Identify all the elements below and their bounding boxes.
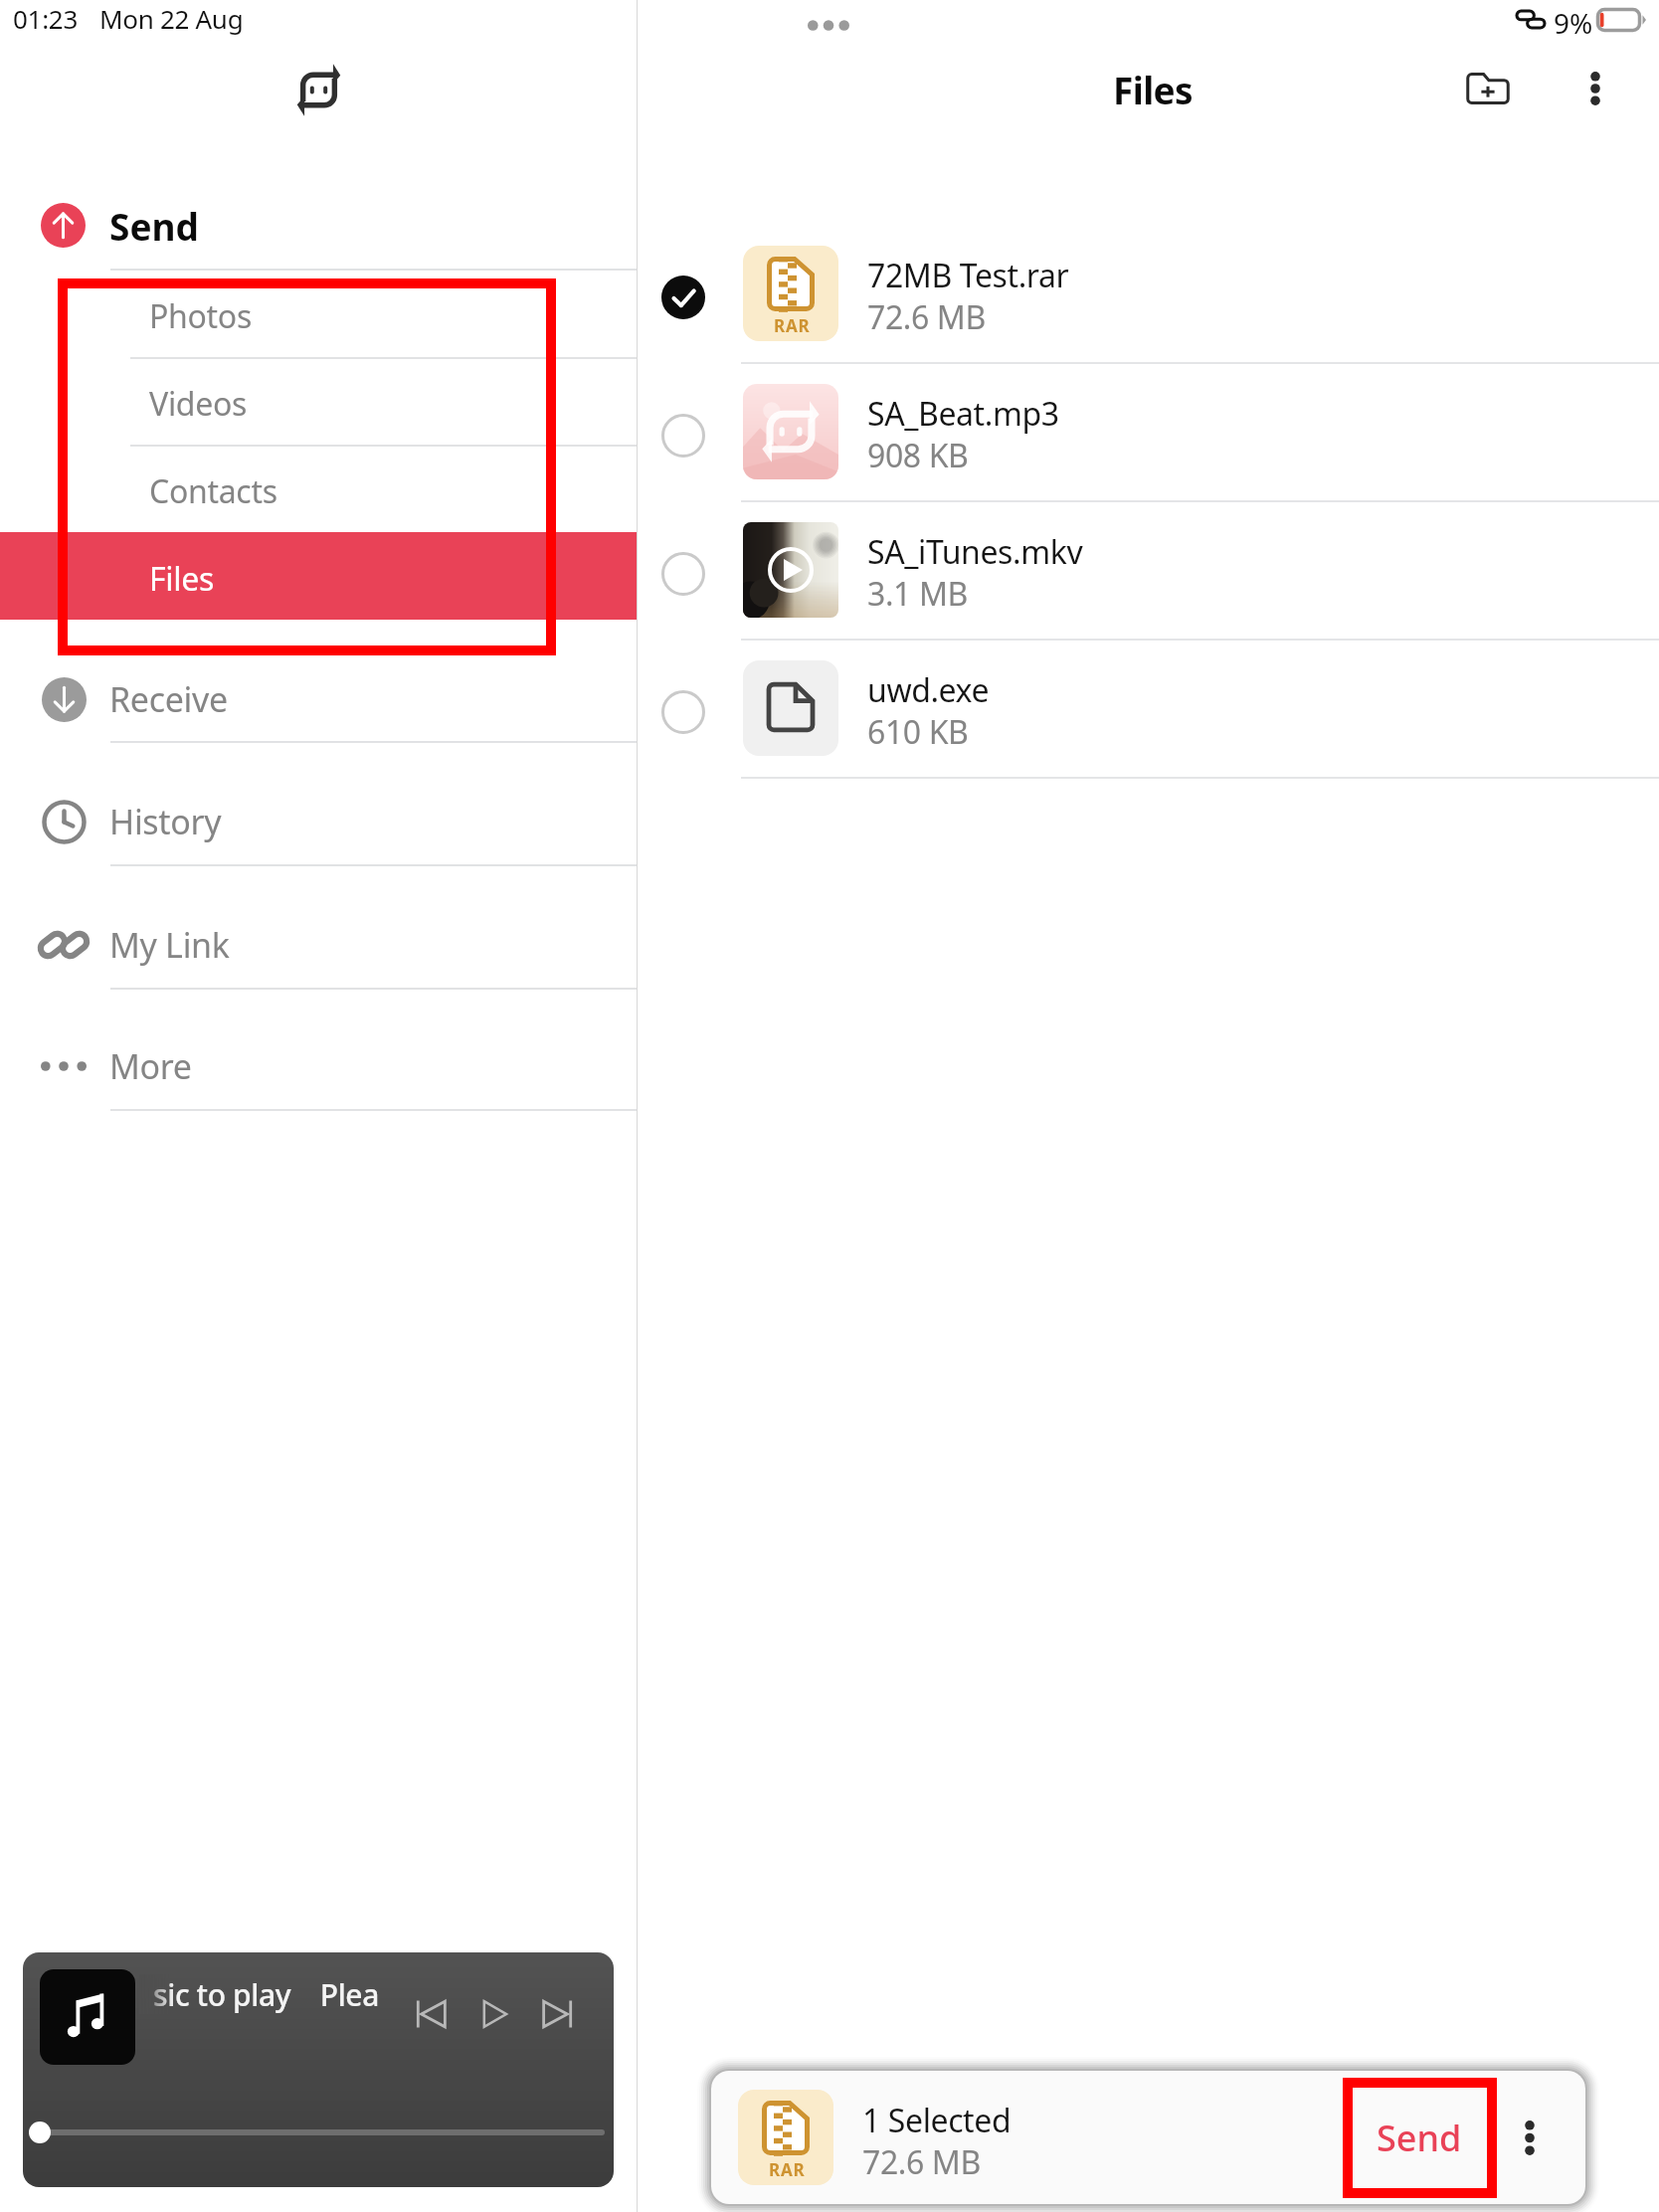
staticText: 1 Selected	[862, 2099, 1012, 2142]
button[interactable]: Contacts	[0, 448, 637, 535]
button[interactable]: Videos	[0, 360, 637, 448]
staticText: SA_Beat.mp3	[867, 392, 1059, 436]
button[interactable]: More options	[1501, 2071, 1559, 2204]
button[interactable]: Send	[1338, 2071, 1501, 2204]
staticText: My Link	[109, 922, 230, 968]
staticText: 3.1 MB	[867, 572, 968, 616]
button[interactable]: Select	[638, 362, 1659, 500]
staticText: Videos	[149, 382, 248, 426]
button[interactable]: Select	[645, 362, 721, 500]
button[interactable]: Receive	[0, 641, 637, 758]
staticText: Send	[1377, 2114, 1462, 2162]
staticText: uwd.exe	[867, 668, 990, 712]
button[interactable]: SHAREit	[282, 51, 354, 129]
staticText: 908 KB	[867, 434, 969, 477]
staticText: 01:23	[13, 1, 78, 36]
staticText: Contacts	[149, 469, 277, 513]
staticText: 72MB Test.rar	[867, 254, 1069, 297]
button[interactable]: New folder	[1453, 54, 1523, 123]
button[interactable]: Files	[0, 532, 637, 620]
staticText: More	[109, 1043, 192, 1089]
button[interactable]: Select	[638, 639, 1659, 777]
button[interactable]: My Link	[0, 886, 637, 1004]
staticText: Photos	[149, 294, 252, 338]
staticText: History	[109, 799, 222, 844]
staticText: 72.6 MB	[862, 2140, 981, 2184]
button[interactable]: Select	[645, 639, 721, 777]
button[interactable]: Photos	[0, 273, 637, 360]
staticText: Files	[1113, 65, 1194, 114]
button[interactable]: Selected	[645, 224, 721, 362]
staticText: Files	[149, 557, 214, 601]
button[interactable]: History	[0, 763, 637, 880]
button[interactable]: Select	[638, 500, 1659, 639]
staticText: Send	[109, 201, 199, 251]
button[interactable]: More options	[1561, 54, 1630, 123]
button[interactable]: Previous	[401, 1984, 461, 2044]
button[interactable]: Send	[0, 181, 637, 269]
button[interactable]: Play	[464, 1984, 524, 2044]
staticText: RAR	[774, 314, 811, 337]
button[interactable]: Next	[527, 1984, 587, 2044]
button[interactable]: More	[0, 1008, 637, 1125]
staticText: SA_iTunes.mkv	[867, 530, 1083, 574]
staticText: 610 KB	[867, 710, 969, 754]
button[interactable]: Select	[645, 500, 721, 639]
staticText: Receive	[109, 676, 228, 722]
staticText: Mon 22 Aug	[99, 1, 244, 36]
staticText: RAR	[769, 2158, 806, 2181]
button[interactable]: Selected	[638, 224, 1659, 362]
staticText: 9%	[1554, 4, 1593, 42]
staticText: sic to play Plea	[153, 1974, 379, 2014]
staticText: 72.6 MB	[867, 295, 986, 339]
